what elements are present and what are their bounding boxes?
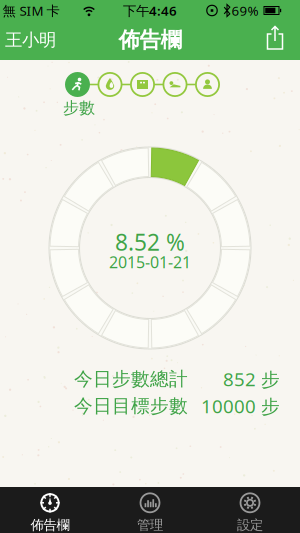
staticText: 10000 步 [201, 394, 280, 418]
button[interactable]: 佈告欄 [0, 489, 100, 533]
staticText: 8.52 % [115, 227, 185, 257]
staticText: 852 步 [223, 367, 280, 391]
button[interactable]: 王小明 [3, 20, 58, 60]
button[interactable]: 設定 [200, 489, 300, 533]
button[interactable] [162, 71, 188, 97]
staticText: 設定 [237, 517, 263, 533]
staticText: 2015-01-21 [109, 251, 191, 273]
staticText: 管理 [137, 517, 163, 533]
staticText: 今日步數總計 [74, 367, 188, 390]
button[interactable] [64, 71, 90, 97]
staticText: 佈告欄 [118, 27, 181, 53]
staticText: 步數 [63, 98, 95, 118]
button[interactable] [194, 71, 220, 97]
button[interactable] [261, 25, 289, 53]
button[interactable]: 管理 [100, 489, 200, 533]
staticText: 69% [231, 2, 258, 19]
staticText: 今日目標步數 [74, 394, 188, 417]
button[interactable] [97, 71, 123, 97]
button[interactable] [129, 71, 155, 97]
staticText: 無 SIM 卡 [2, 2, 59, 19]
staticText: 佈告欄 [30, 517, 69, 533]
staticText: 王小明 [5, 29, 56, 51]
staticText: 下午4:46 [123, 2, 177, 19]
